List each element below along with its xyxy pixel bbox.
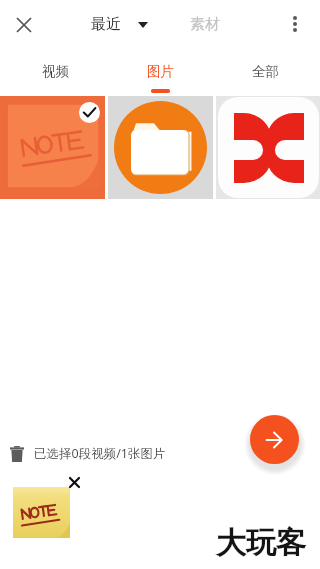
button[interactable]: Red logo image (216, 96, 320, 199)
button[interactable]: Note image, selected (0, 96, 105, 199)
staticText: 最近 (91, 15, 121, 34)
staticText: 全部 (252, 63, 279, 80)
button[interactable]: Selected (79, 102, 100, 123)
staticText: 大玩客 (216, 524, 306, 562)
button[interactable]: 素材 (190, 9, 220, 40)
button[interactable]: Close (8, 9, 39, 40)
button[interactable]: Folder icon image (108, 96, 213, 199)
staticText: 视频 (42, 63, 69, 80)
staticText: 图片 (147, 63, 174, 80)
button[interactable]: Remove (65, 473, 83, 491)
staticText: 素材 (190, 15, 220, 34)
button[interactable]: 图片 (110, 50, 210, 96)
button[interactable]: 最近 (91, 9, 148, 40)
button[interactable]: Selected note image (13, 487, 70, 538)
button[interactable]: Next (250, 415, 299, 464)
staticText: 已选择0段视频/1张图片 (34, 445, 166, 462)
button[interactable]: More options (280, 9, 310, 39)
button[interactable]: 视频 (5, 50, 105, 96)
button[interactable]: 全部 (215, 50, 315, 96)
button[interactable]: 已选择0段视频/1张图片 (10, 442, 166, 464)
